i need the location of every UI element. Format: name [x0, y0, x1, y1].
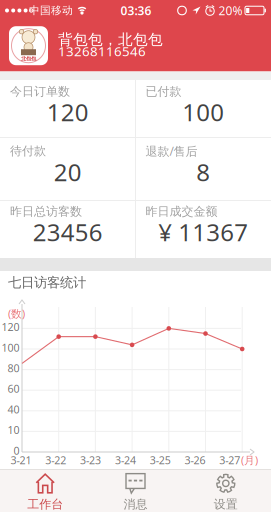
- staticText: 昨日总访客数: [10, 204, 82, 219]
- staticText: 已付款: [145, 84, 181, 99]
- staticText: 80: [7, 361, 19, 375]
- staticText: 20: [54, 156, 82, 188]
- staticText: 3-27: [219, 453, 240, 467]
- staticText: 10: [7, 423, 19, 437]
- staticText: 中国移动: [29, 4, 73, 17]
- staticText: 100: [1, 340, 19, 355]
- staticText: 03:36: [120, 2, 151, 18]
- staticText: 20%: [218, 2, 242, 18]
- staticText: 3-23: [80, 453, 101, 467]
- staticText: 3-24: [115, 453, 136, 467]
- staticText: 消息: [123, 497, 147, 512]
- staticText: 23456: [33, 216, 103, 248]
- staticText: 120: [47, 96, 89, 128]
- staticText: 120: [1, 320, 19, 334]
- staticText: 背包包，北包包: [58, 30, 163, 48]
- staticText: 40: [7, 402, 19, 416]
- staticText: ¥ 11367: [158, 216, 248, 248]
- staticText: (月): [241, 453, 258, 467]
- staticText: 3-26: [184, 453, 205, 467]
- staticText: 工作台: [27, 497, 63, 512]
- staticText: 3-25: [150, 453, 171, 467]
- staticText: 3-22: [45, 453, 66, 467]
- staticText: 8: [196, 156, 210, 188]
- staticText: 100: [182, 96, 224, 128]
- staticText: 设置: [214, 497, 238, 512]
- staticText: 退款/售后: [145, 143, 197, 159]
- button[interactable]: 北包包: [0, 20, 271, 71]
- button[interactable]: 工作台: [0, 471, 90, 512]
- staticText: 60: [7, 382, 19, 396]
- staticText: 待付款: [10, 144, 46, 158]
- button[interactable]: 设置: [181, 471, 271, 512]
- staticText: 3-21: [10, 453, 31, 467]
- staticText: 北包包: [21, 55, 36, 62]
- staticText: 七日访客统计: [8, 274, 86, 291]
- staticText: 昨日成交金额: [145, 204, 217, 219]
- staticText: 0: [13, 443, 19, 458]
- staticText: (数): [8, 306, 25, 321]
- staticText: 今日订单数: [10, 84, 70, 99]
- staticText: 13268116546: [58, 42, 146, 60]
- button[interactable]: 消息: [90, 471, 181, 512]
